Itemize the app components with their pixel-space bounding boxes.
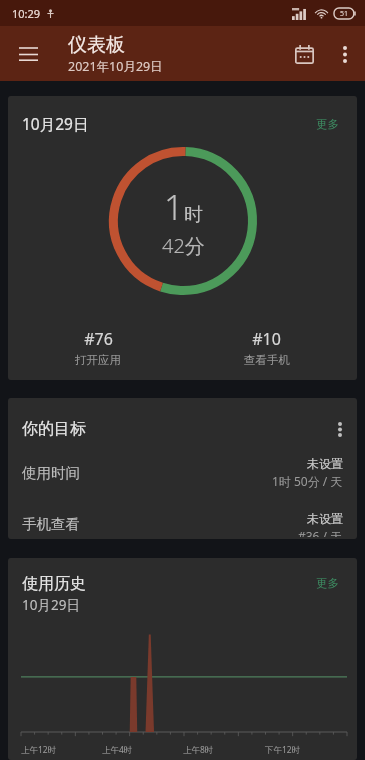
staticText: 未设置 bbox=[307, 511, 343, 526]
button[interactable]: #10 bbox=[182, 324, 351, 371]
staticText: 42分 bbox=[162, 232, 205, 259]
button[interactable]: #76 bbox=[14, 324, 182, 371]
staticText: 未设置 bbox=[307, 456, 343, 471]
staticText: 上午8时 bbox=[183, 744, 214, 756]
staticText: 上午4时 bbox=[102, 744, 133, 756]
staticText: 更多 bbox=[316, 576, 339, 590]
button[interactable]: 10月29日 bbox=[8, 96, 357, 380]
button[interactable]: 手机查看 bbox=[8, 509, 357, 539]
staticText: 10月29日 bbox=[22, 113, 89, 134]
staticText: 下午12时 bbox=[265, 744, 301, 756]
staticText: 打开应用 bbox=[75, 353, 121, 367]
staticText: 1 bbox=[164, 184, 184, 230]
staticText: 手机查看 bbox=[22, 515, 80, 533]
staticText: 时 bbox=[184, 203, 203, 227]
button[interactable]: 更多 bbox=[312, 574, 343, 592]
button[interactable]: 使用时间 bbox=[8, 454, 357, 491]
staticText: 查看手机 bbox=[244, 353, 290, 367]
staticText: 使用历史 bbox=[22, 574, 86, 594]
staticText: 更多 bbox=[316, 117, 339, 131]
staticText: #76 bbox=[84, 328, 113, 350]
button[interactable]: Menu bbox=[8, 34, 48, 74]
staticText: 仪表板 bbox=[68, 33, 125, 57]
button[interactable]: 更多 bbox=[312, 115, 343, 133]
staticText: 使用时间 bbox=[22, 464, 80, 482]
staticText: 10月29日 bbox=[22, 596, 80, 614]
button[interactable]: Goal options bbox=[323, 412, 357, 446]
staticText: 10:29 bbox=[12, 6, 41, 21]
staticText: 51 bbox=[340, 9, 349, 19]
staticText: 你的目标 bbox=[22, 419, 86, 439]
button[interactable]: More options bbox=[325, 34, 365, 74]
staticText: 1时 50分 / 天 bbox=[272, 473, 343, 489]
staticText: 上午12时 bbox=[21, 744, 57, 756]
staticText: #36 / 天 bbox=[298, 528, 343, 537]
staticText: #10 bbox=[252, 328, 281, 350]
button[interactable]: Calendar bbox=[283, 33, 325, 75]
staticText: 2021年10月29日 bbox=[68, 58, 163, 75]
